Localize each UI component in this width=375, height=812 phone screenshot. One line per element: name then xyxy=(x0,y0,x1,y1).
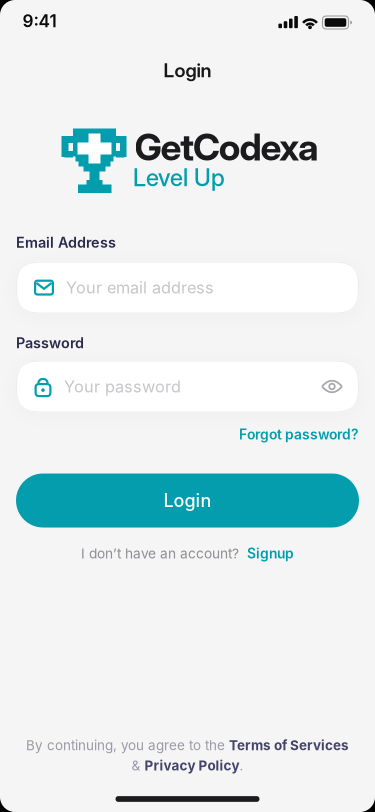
button[interactable]: Your email address xyxy=(16,262,359,314)
staticText: . xyxy=(239,757,243,774)
staticText: Login xyxy=(163,59,211,82)
staticText: Level Up xyxy=(133,163,225,192)
staticText: Login xyxy=(163,490,211,511)
staticText: Your email address xyxy=(66,278,214,297)
button[interactable]: Show password xyxy=(321,378,343,394)
staticText: 9:41 xyxy=(22,11,56,31)
button[interactable]: Signup xyxy=(247,545,294,562)
button[interactable]: Forgot password? xyxy=(239,426,359,443)
staticText: Terms of Services xyxy=(229,737,349,753)
staticText: & xyxy=(131,757,144,774)
button[interactable]: Login xyxy=(16,473,359,527)
staticText: GetCodexa xyxy=(135,124,319,169)
staticText: Password xyxy=(16,334,84,352)
staticText: By continuing, you agree to the xyxy=(26,737,229,753)
staticText: Email Address xyxy=(16,234,116,251)
staticText: Signup xyxy=(247,545,294,562)
staticText: I don’t have an account? xyxy=(81,545,239,562)
staticText: Forgot password? xyxy=(239,426,359,443)
button[interactable]: Your password xyxy=(16,360,359,412)
staticText: Privacy Policy xyxy=(144,757,239,774)
staticText: Your password xyxy=(64,377,181,396)
